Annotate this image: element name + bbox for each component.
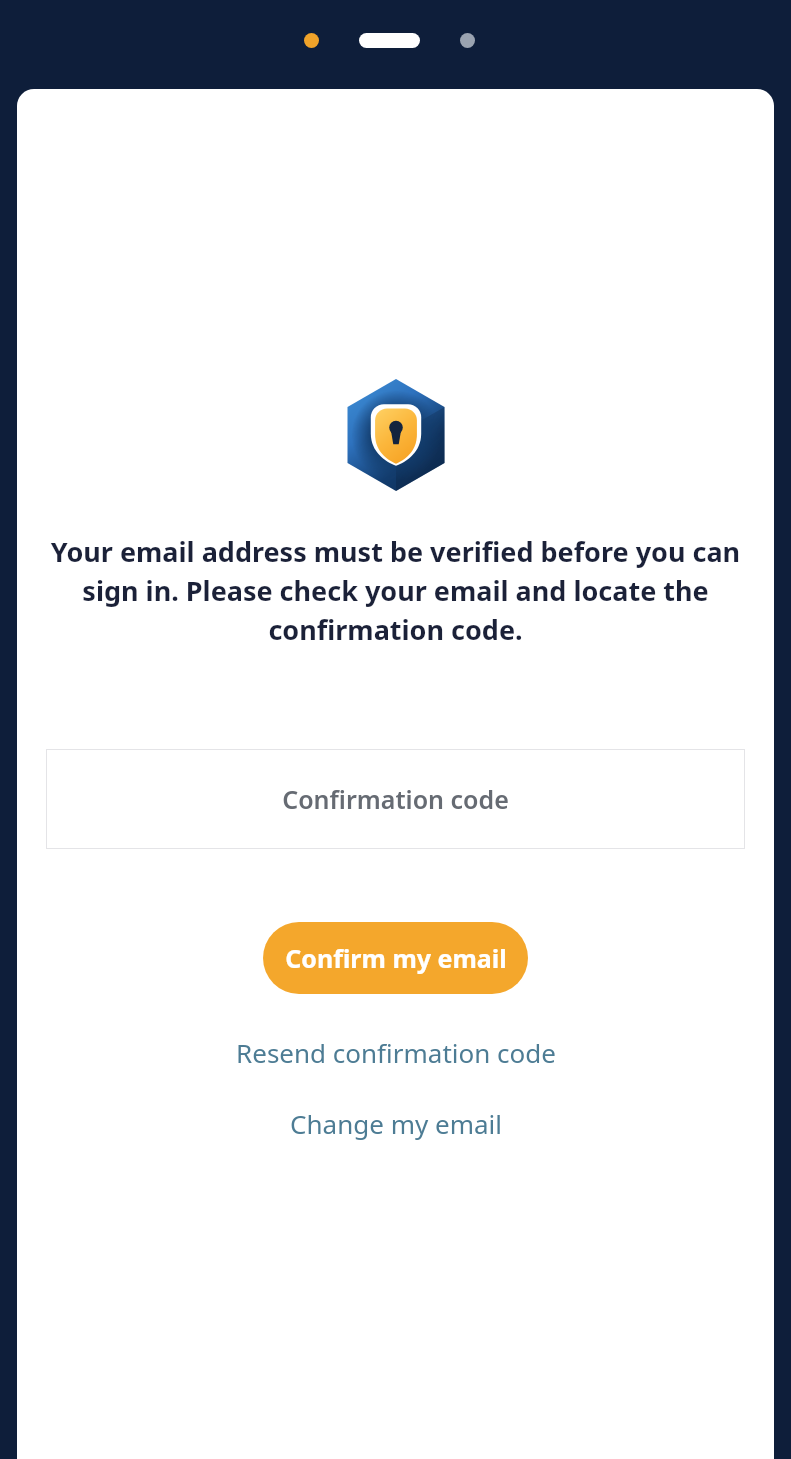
- staticText: Confirm my email: [285, 941, 507, 975]
- staticText: Change my email: [290, 1106, 502, 1141]
- staticText: Your email address must be verified befo…: [29, 533, 762, 648]
- button[interactable]: Confirm my email: [263, 922, 528, 994]
- button[interactable]: Change my email: [276, 1098, 516, 1149]
- staticText: Resend confirmation code: [236, 1035, 556, 1070]
- button[interactable]: Confirmation code: [46, 749, 745, 849]
- button[interactable]: Resend confirmation code: [222, 1027, 570, 1078]
- staticText: Confirmation code: [282, 782, 509, 816]
